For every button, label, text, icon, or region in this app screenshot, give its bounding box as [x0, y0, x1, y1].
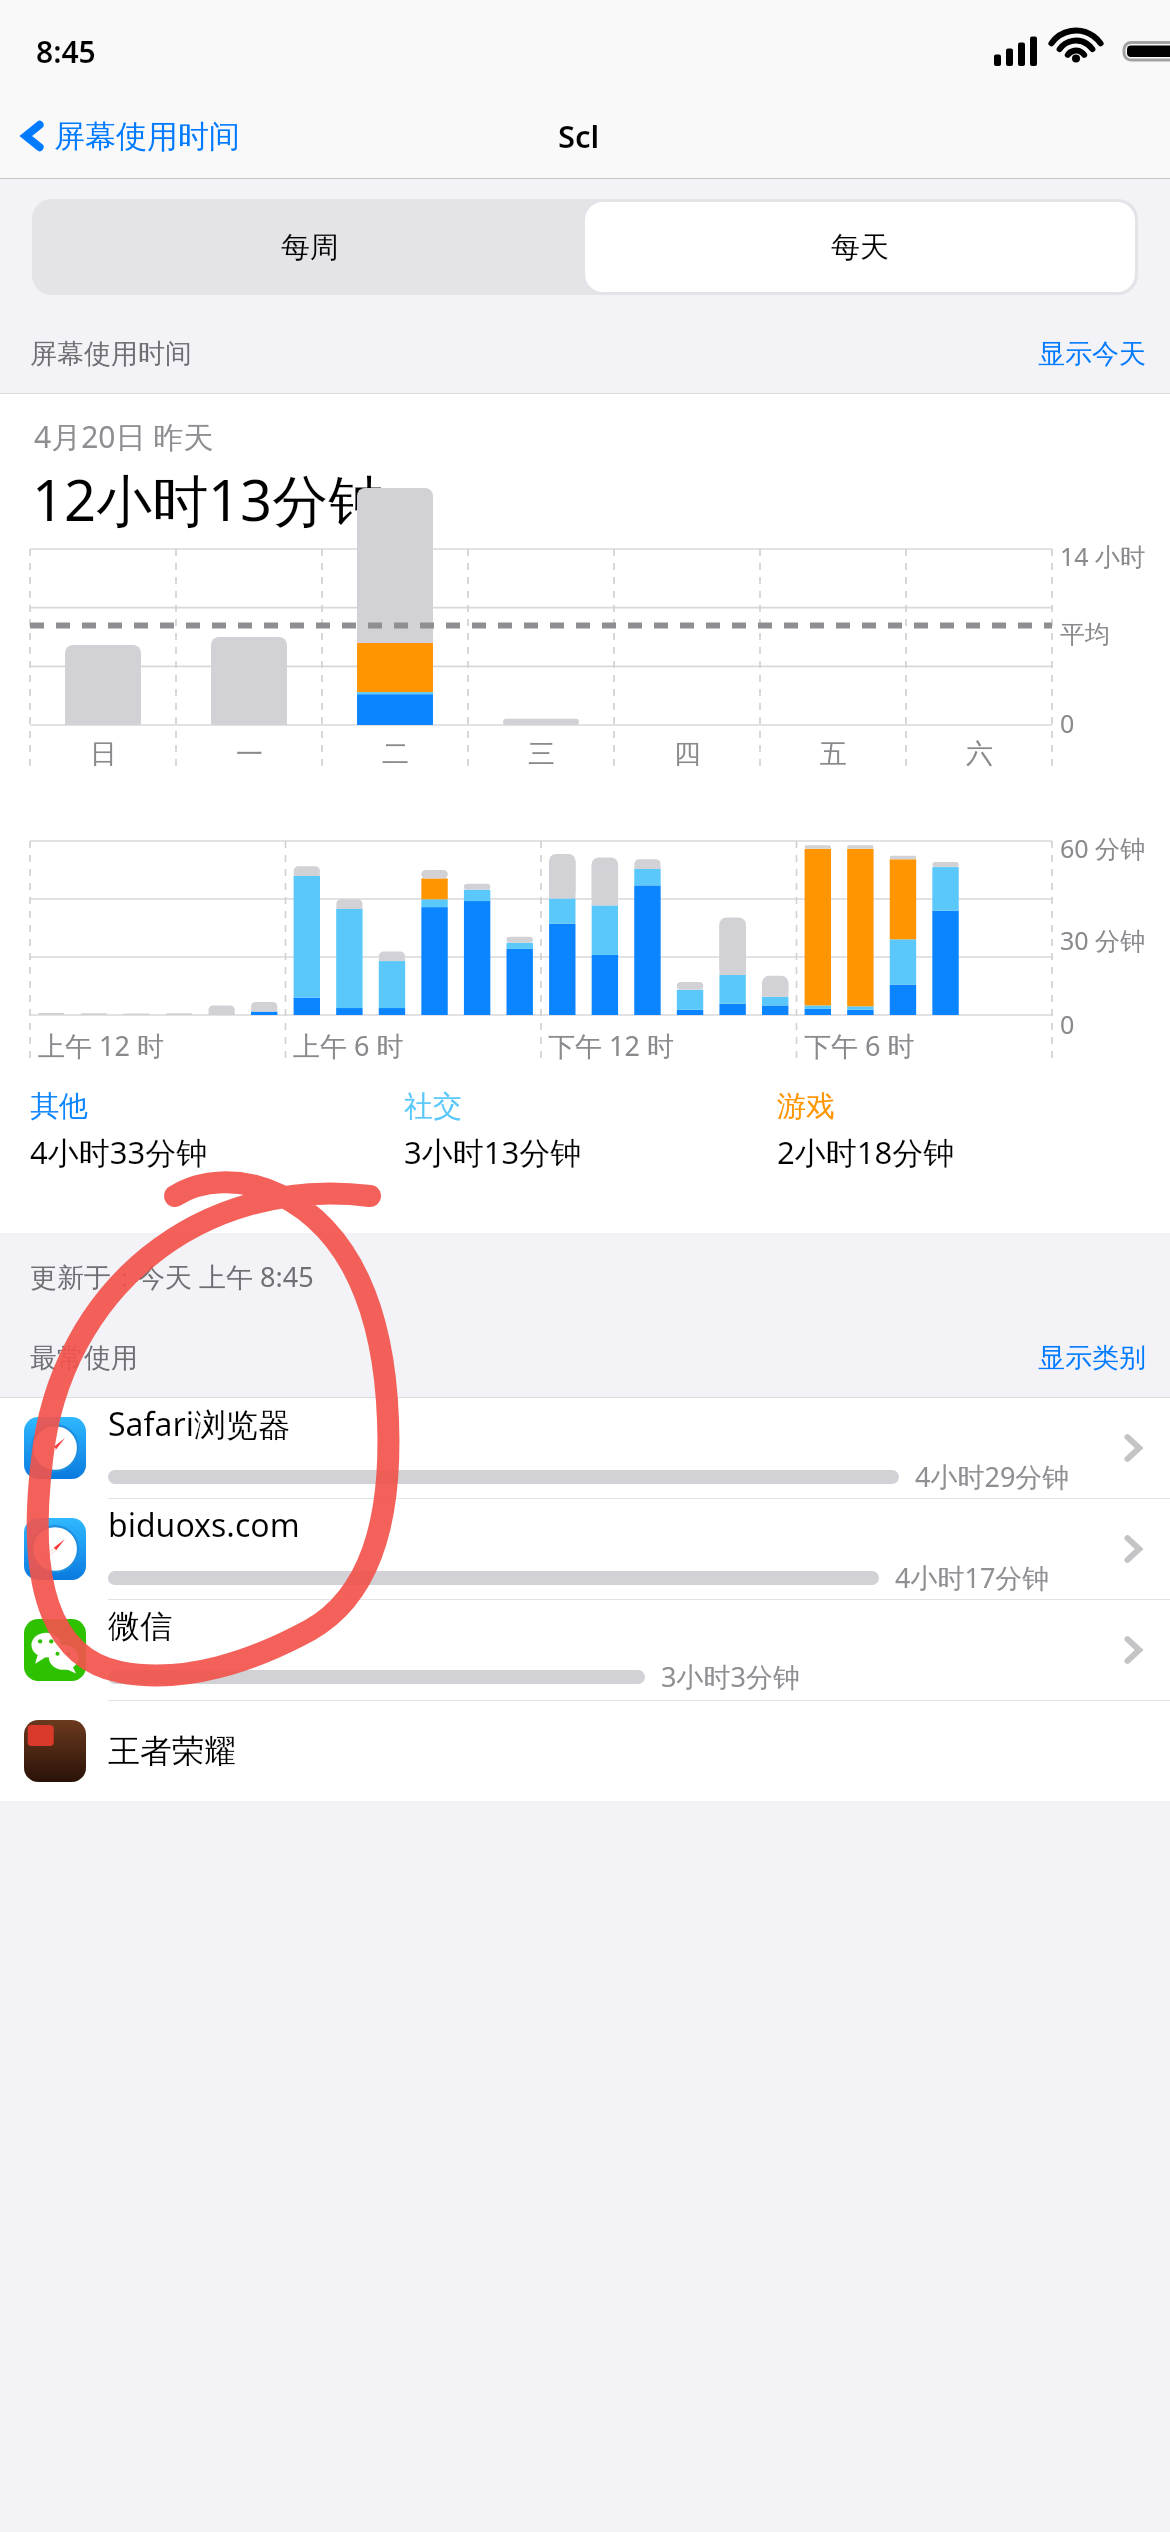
staticText: Safari浏览器 [108, 1402, 290, 1446]
staticText: 每周 [281, 229, 339, 266]
staticText: 四 [674, 737, 701, 771]
button[interactable]: 显示今天 [1038, 337, 1146, 371]
staticText: 六 [966, 737, 993, 771]
button[interactable]: 游戏 [777, 1088, 1150, 1173]
staticText: 3小时13分钟 [404, 1131, 582, 1173]
staticText: 屏幕使用时间 [54, 117, 240, 156]
staticText: 4小时29分钟 [915, 1458, 1070, 1495]
other: Open [1122, 1532, 1144, 1566]
staticText: 日 [90, 737, 117, 771]
staticText: 上午 6 时 [293, 1027, 404, 1064]
other: Back [18, 116, 48, 156]
button[interactable]: 每周 [35, 202, 585, 292]
staticText: 屏幕使用时间 [30, 337, 192, 371]
staticText: 4小时33分钟 [30, 1131, 208, 1173]
staticText: 五 [820, 737, 847, 771]
staticText: 4月20日 昨天 [34, 416, 214, 457]
staticText: 4小时17分钟 [895, 1559, 1050, 1596]
staticText: 三 [528, 737, 555, 771]
staticText: 最常使用 [30, 1341, 138, 1375]
staticText: 8:45 [36, 31, 96, 72]
staticText: 每天 [831, 229, 889, 266]
button[interactable]: 王者荣耀 [0, 1701, 1170, 1801]
staticText: Scl [558, 115, 600, 157]
staticText: 更新于：今天 上午 8:45 [30, 1258, 314, 1295]
staticText: 上午 12 时 [38, 1027, 164, 1064]
staticText: 游戏 [777, 1088, 835, 1125]
staticText: 下午 6 时 [804, 1027, 915, 1064]
button[interactable]: 社交 [404, 1088, 777, 1173]
other: Open [1122, 1431, 1144, 1465]
other: Open [1122, 1633, 1144, 1667]
staticText: 3小时3分钟 [661, 1658, 800, 1695]
button[interactable]: 微信 [0, 1600, 1170, 1700]
staticText: biduoxs.com [108, 1503, 300, 1547]
staticText: 王者荣耀 [108, 1731, 236, 1771]
staticText: 显示今天 [1038, 337, 1146, 371]
staticText: 其他 [30, 1088, 88, 1125]
staticText: 社交 [404, 1088, 462, 1125]
staticText: 12小时13分钟 [32, 461, 385, 537]
button[interactable]: Back [18, 116, 240, 156]
staticText: 二 [382, 737, 409, 771]
staticText: 一 [236, 737, 263, 771]
button[interactable]: biduoxs.com [0, 1499, 1170, 1599]
button[interactable]: 每天 [585, 202, 1135, 292]
staticText: 显示类别 [1038, 1341, 1146, 1375]
staticText: 0 [1060, 1007, 1075, 1041]
staticText: 平均 [1060, 619, 1110, 650]
button[interactable]: Safari浏览器 [0, 1398, 1170, 1498]
staticText: 14 小时 [1060, 539, 1146, 573]
staticText: 微信 [108, 1606, 172, 1646]
staticText: 下午 12 时 [548, 1027, 674, 1064]
staticText: 0 [1060, 706, 1075, 740]
staticText: 2小时18分钟 [777, 1131, 955, 1173]
button[interactable]: 显示类别 [1038, 1341, 1146, 1375]
button[interactable]: 其他 [30, 1088, 404, 1173]
staticText: 60 分钟 [1060, 831, 1146, 865]
staticText: 30 分钟 [1060, 923, 1146, 957]
